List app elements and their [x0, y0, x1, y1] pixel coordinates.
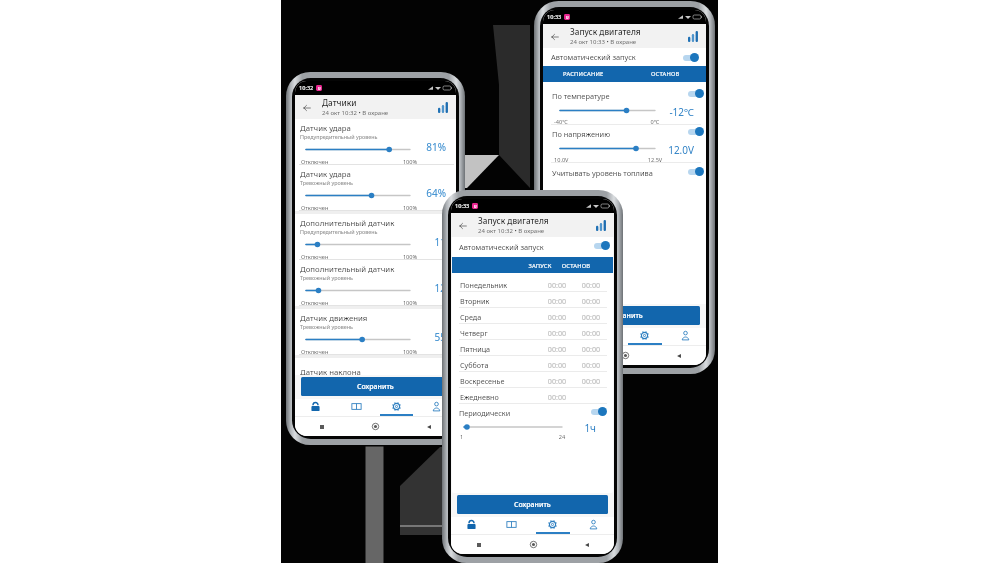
button[interactable]: ОСТАНОВ	[624, 66, 706, 82]
staticText: Среда	[460, 312, 482, 322]
staticText: 24	[554, 433, 570, 441]
button[interactable]: Среда	[452, 308, 613, 324]
button[interactable]: Settings	[376, 399, 416, 414]
button[interactable]: Дополнительный датчик	[295, 214, 456, 260]
button[interactable]: Signal strength	[436, 100, 450, 114]
staticText: Тревожный уровень	[300, 179, 353, 186]
staticText: 24 окт 10:33 • В охране	[570, 38, 637, 46]
button[interactable]: Profile	[416, 399, 456, 414]
button[interactable]: По напряжению	[543, 125, 706, 163]
staticText: Отключен	[301, 253, 329, 261]
staticText: Суббота	[460, 360, 489, 370]
staticText: 1ч	[570, 421, 596, 435]
button[interactable]: Понедельник	[452, 276, 613, 292]
staticText: 11	[419, 235, 446, 249]
staticText: 00:00	[542, 296, 572, 306]
staticText: Периодически	[459, 408, 511, 418]
button[interactable]: Security	[451, 517, 491, 532]
staticText: 00:00	[576, 328, 606, 338]
button[interactable]: РАСПИСАНИЕ	[543, 66, 624, 82]
staticText: Дополнительный датчик	[300, 264, 395, 275]
staticText: Датчик движения	[300, 313, 368, 324]
staticText: U	[474, 204, 477, 209]
staticText: U	[566, 15, 569, 20]
staticText: 00:00	[576, 360, 606, 370]
button[interactable]: Дополнительный датчик	[295, 260, 456, 306]
staticText: 00:00	[542, 376, 572, 386]
staticText: 00:00	[576, 296, 606, 306]
staticText: 00:00	[576, 280, 606, 290]
staticText: 00:00	[542, 344, 572, 354]
button[interactable]: Автоматический запуск	[543, 48, 706, 66]
staticText: 00:00	[542, 360, 572, 370]
staticText: Предупредительный уровень	[300, 228, 378, 235]
staticText: Отключен	[301, 158, 329, 166]
staticText: Датчик удара	[300, 169, 351, 180]
button[interactable]: Суббота	[452, 356, 613, 372]
button[interactable]: Security	[295, 399, 336, 414]
button[interactable]: Back	[547, 29, 562, 44]
staticText: 00:00	[542, 280, 572, 290]
staticText: 100%	[400, 299, 420, 307]
button[interactable]: Автоматический запуск	[452, 237, 613, 257]
staticText: Отключен	[301, 204, 329, 212]
staticText: 100%	[400, 204, 420, 212]
button[interactable]: Journal	[491, 517, 532, 532]
button[interactable]: Периодически	[452, 404, 613, 420]
staticText: Запуск двигателя	[570, 26, 641, 37]
staticText: 81%	[419, 140, 446, 154]
button[interactable]: Journal	[336, 399, 376, 414]
button[interactable]: Settings	[624, 328, 665, 343]
staticText: 100%	[400, 253, 420, 261]
staticText: Понедельник	[460, 280, 507, 290]
staticText: 64%	[419, 186, 446, 200]
staticText: Ежедневно	[460, 392, 499, 402]
button[interactable]: Вторник	[452, 292, 613, 308]
button[interactable]: Profile	[573, 517, 614, 532]
button[interactable]: ЗАПУСК	[452, 257, 613, 273]
button[interactable]: Back	[299, 100, 314, 115]
button[interactable]: Воскресенье	[452, 372, 613, 388]
staticText: Датчик наклона	[300, 367, 361, 378]
staticText: 10.0V	[554, 156, 569, 164]
button[interactable]: Signal strength	[594, 218, 608, 232]
button[interactable]: Пятница	[452, 340, 613, 356]
button[interactable]: Датчик удара	[295, 165, 456, 211]
staticText: Тревожный уровень	[300, 274, 353, 281]
staticText: ОСТАНОВ	[651, 70, 680, 78]
button[interactable]: Security	[543, 328, 583, 343]
staticText: 24 окт 10:32 • В охране	[478, 227, 545, 235]
button[interactable]: Profile	[665, 328, 706, 343]
button[interactable]: Сохранить	[301, 377, 450, 396]
button[interactable]: Back	[455, 218, 470, 233]
button[interactable]: Journal	[583, 328, 624, 343]
staticText: 24 окт 10:32 • В охране	[322, 109, 389, 117]
staticText: РАСПИСАНИЕ	[563, 70, 604, 78]
staticText: По напряжению	[552, 129, 611, 139]
button[interactable]: По температуре	[543, 87, 706, 125]
staticText: 00:00	[542, 312, 572, 322]
staticText: ОСТАНОВ	[557, 262, 595, 270]
button[interactable]: Учитывать уровень топлива	[543, 163, 706, 183]
staticText: 1	[460, 433, 464, 441]
staticText: 10:33	[455, 202, 470, 210]
staticText: Воскресенье	[460, 376, 505, 386]
staticText: Учитывать уровень топлива	[552, 168, 653, 178]
button[interactable]: Датчик движения	[295, 309, 456, 355]
staticText: 00:00	[542, 328, 572, 338]
button[interactable]: Ежедневно	[452, 388, 613, 404]
button[interactable]: Settings	[532, 517, 573, 532]
button[interactable]: Сохранить	[457, 495, 608, 514]
staticText: Автоматический запуск	[551, 52, 636, 62]
staticText: 00:00	[576, 344, 606, 354]
button[interactable]: Датчик удара	[295, 119, 456, 165]
staticText: Отключен	[301, 299, 329, 307]
staticText: Датчики	[322, 97, 357, 108]
button[interactable]: Signal strength	[686, 29, 700, 43]
staticText: 12.5V	[645, 156, 665, 164]
button[interactable]: Четверг	[452, 324, 613, 340]
staticText: 12	[419, 281, 446, 295]
button[interactable]: Сохранить	[549, 306, 700, 325]
staticText: 10:33	[547, 13, 562, 21]
staticText: Тревожный уровень	[300, 323, 353, 330]
